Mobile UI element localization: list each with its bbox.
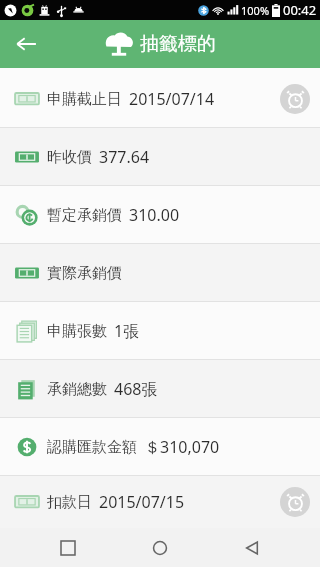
staticText: 2015/07/14 (129, 88, 215, 110)
button[interactable]: 申購張數 (0, 302, 320, 359)
staticText: 468張 (114, 378, 158, 400)
staticText: 00:42 (283, 1, 317, 19)
button[interactable]: 扣款日 (0, 476, 320, 528)
staticText: 申購張數 (47, 322, 107, 341)
staticText: 100% (241, 3, 270, 18)
button[interactable]: Recent apps (44, 528, 92, 567)
button[interactable]: Back (6, 24, 46, 64)
button[interactable]: 申購截止日 (0, 70, 320, 127)
button[interactable]: 承銷總數 (0, 360, 320, 417)
button[interactable]: 暫定承銷價 (0, 186, 320, 243)
staticText: 昨收價 (47, 148, 92, 167)
button[interactable]: Home (136, 528, 184, 567)
button[interactable]: Back (228, 528, 276, 567)
staticText: ＄310,070 (144, 436, 220, 458)
staticText: 實際承銷價 (47, 264, 122, 283)
button[interactable]: 實際承銷價 (0, 244, 320, 301)
staticText: 承銷總數 (47, 380, 107, 399)
button[interactable]: Set reminder (280, 84, 310, 114)
button[interactable]: 昨收價 (0, 128, 320, 185)
staticText: 抽籤標的 (140, 32, 216, 56)
staticText: 310.00 (129, 204, 180, 226)
staticText: 認購匯款金額 (47, 438, 137, 457)
staticText: 2015/07/15 (99, 491, 185, 513)
button[interactable]: Set reminder (280, 487, 310, 517)
staticText: 扣款日 (47, 493, 92, 512)
staticText: 377.64 (99, 146, 150, 168)
button[interactable]: 認購匯款金額 (0, 418, 320, 475)
staticText: 1張 (114, 320, 140, 342)
staticText: 暫定承銷價 (47, 206, 122, 225)
staticText: 申購截止日 (47, 90, 122, 109)
